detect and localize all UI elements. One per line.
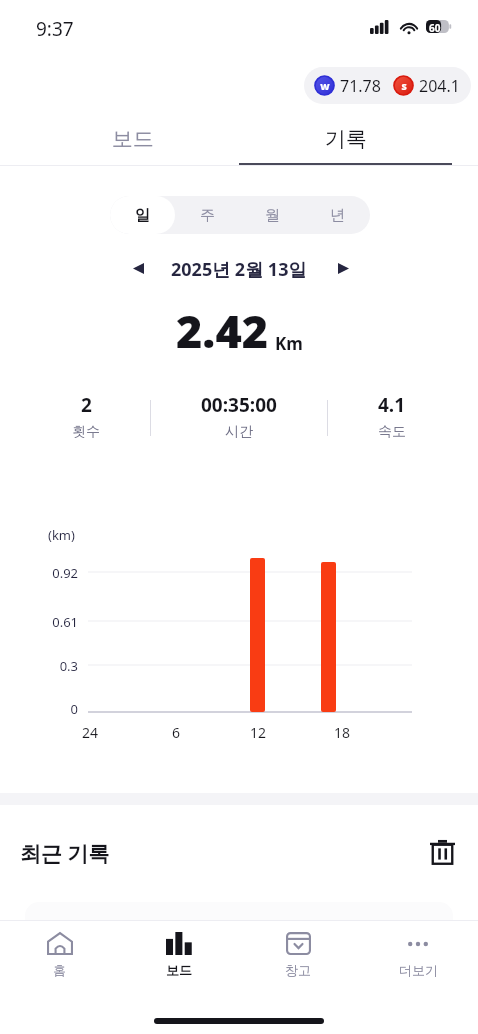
staticText: 9:37 (36, 16, 74, 42)
button[interactable] (25, 902, 453, 942)
button[interactable]: Previous day (122, 252, 154, 284)
button[interactable]: 년 (305, 196, 370, 234)
staticText: 홈 (53, 962, 66, 978)
button[interactable]: Delete records (420, 830, 464, 874)
button[interactable]: 4.1 (326, 392, 458, 441)
staticText: 2 (81, 392, 92, 418)
staticText: 보드 (166, 962, 192, 978)
staticText: 횟수 (72, 423, 100, 441)
staticText: Km (275, 332, 303, 355)
staticText: 0.3 (18, 657, 78, 675)
button[interactable]: 창고 (238, 920, 358, 996)
staticText: 최근 기록 (20, 839, 110, 868)
staticText: 4.1 (378, 392, 406, 418)
staticText: 시간 (225, 423, 253, 441)
button[interactable]: 00:35:00 (153, 392, 325, 441)
staticText: W (320, 80, 330, 92)
button[interactable]: 더보기 (358, 920, 478, 996)
staticText: 기록 (325, 126, 367, 152)
staticText: 더보기 (399, 962, 438, 978)
button[interactable]: W (304, 67, 471, 104)
staticText: 71.78 (340, 75, 381, 97)
button[interactable]: 기록 (239, 112, 452, 166)
button[interactable]: 월 (240, 196, 305, 234)
button[interactable]: 홈 (0, 920, 119, 996)
staticText: 00:35:00 (201, 392, 277, 418)
staticText: 18 (332, 723, 352, 742)
staticText: 0 (18, 700, 78, 718)
staticText: 월 (265, 206, 280, 225)
button[interactable]: 보드 (119, 920, 238, 996)
staticText: 속도 (378, 423, 406, 441)
staticText: (km) (48, 526, 75, 544)
staticText: 204.1 (419, 75, 460, 97)
staticText: 년 (330, 206, 345, 225)
button[interactable]: 2 (20, 392, 152, 441)
staticText: 0.61 (18, 613, 78, 631)
button[interactable]: 보드 (26, 112, 239, 166)
staticText: S (401, 80, 407, 92)
button[interactable]: 일 (110, 196, 175, 234)
staticText: 12 (248, 723, 268, 742)
staticText: 2025년 2월 13일 (171, 257, 307, 282)
staticText: 창고 (285, 962, 311, 978)
button[interactable]: 주 (175, 196, 240, 234)
staticText: 주 (200, 206, 215, 225)
staticText: 6 (166, 723, 186, 742)
button[interactable]: Next day (327, 252, 359, 284)
staticText: 60 (429, 21, 441, 35)
staticText: 보드 (112, 126, 154, 152)
staticText: 0.92 (18, 564, 78, 582)
staticText: 일 (135, 206, 150, 225)
staticText: 24 (80, 723, 100, 742)
staticText: 2.42 (176, 300, 269, 361)
